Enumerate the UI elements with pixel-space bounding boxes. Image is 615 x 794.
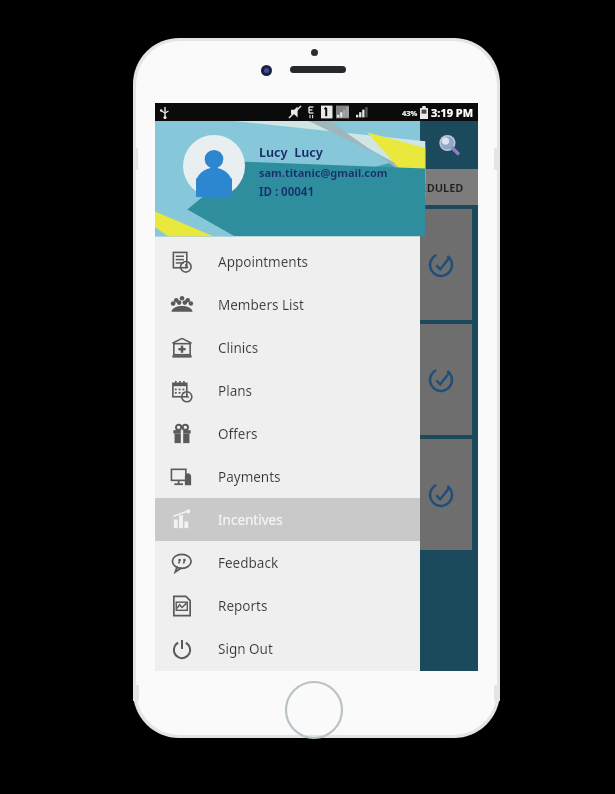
staticText: SCHEDULED [399,180,464,195]
button[interactable]: Clinics [155,326,420,369]
staticText: Incentives [218,511,283,529]
staticText: ID : 00041 [259,184,314,200]
staticText: Plans [218,382,253,400]
button[interactable]: Appointments [155,240,420,283]
staticText: Offers [218,425,258,443]
button[interactable]: Sign Out [155,627,420,670]
button[interactable]: Search [434,130,464,160]
staticText: 3:19 PM [431,105,474,120]
button[interactable] [161,324,472,435]
button[interactable]: Plans [155,369,420,412]
button[interactable]: SCHEDULED [155,169,478,205]
staticText: Sign Out [218,640,273,658]
staticText: Payments [218,468,281,486]
button[interactable] [161,209,472,320]
staticText: Clinics [218,339,259,357]
button[interactable] [161,439,472,550]
button[interactable]: Incentives [155,498,420,541]
staticText: sam.titanic@gmail.com [259,165,388,180]
button[interactable]: Offers [155,412,420,455]
staticText: Lucy Lucy [259,144,323,161]
staticText: Feedback [218,554,279,572]
staticText: Reports [218,597,268,615]
staticText: Members List [218,296,304,314]
button[interactable]: Feedback [155,541,420,584]
staticText: 43% [402,108,418,118]
button[interactable]: Reports [155,584,420,627]
button[interactable]: Members List [155,283,420,326]
button[interactable]: Payments [155,455,420,498]
staticText: Appointments [218,253,309,271]
